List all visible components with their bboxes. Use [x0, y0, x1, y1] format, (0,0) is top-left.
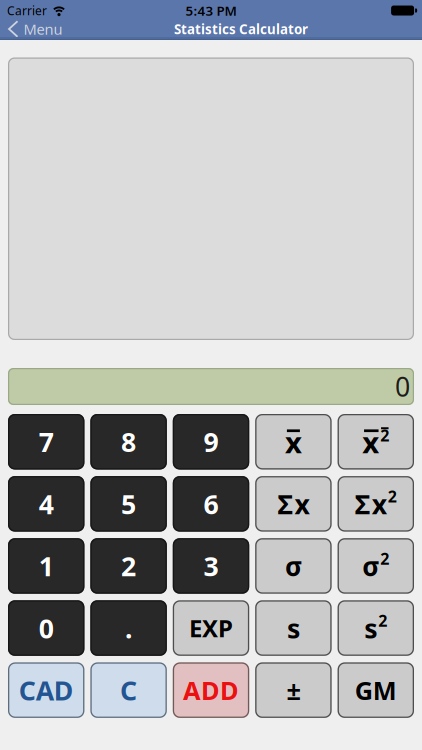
staticText: s	[287, 610, 300, 646]
staticText: s	[364, 610, 377, 646]
button[interactable]: EXP	[173, 600, 249, 656]
staticText: 7	[39, 424, 54, 459]
button[interactable]: σ	[255, 538, 332, 594]
staticText: GM	[355, 673, 397, 707]
staticText: x	[285, 422, 302, 461]
staticText: 2	[380, 425, 389, 446]
staticText: σ	[285, 548, 302, 584]
staticText: x	[362, 422, 379, 461]
button[interactable]: x	[255, 414, 332, 469]
staticText: CAD	[19, 672, 74, 708]
button[interactable]: 7	[8, 414, 84, 469]
button[interactable]: σ	[338, 538, 414, 594]
staticText: 5	[121, 486, 136, 521]
staticText: 9	[203, 424, 218, 459]
button[interactable]: s	[338, 600, 414, 656]
staticText: .	[125, 610, 132, 646]
button[interactable]: .	[90, 600, 167, 656]
staticText: Σx	[355, 486, 387, 521]
button[interactable]: 3	[173, 538, 249, 594]
staticText: 4	[39, 486, 54, 521]
staticText: Carrier	[7, 2, 47, 18]
staticText: 1	[39, 548, 54, 584]
staticText: 5:43 PM	[185, 2, 236, 19]
staticText: 2	[378, 610, 387, 631]
staticText: 3	[203, 548, 218, 584]
staticText: ADD	[183, 673, 239, 707]
button[interactable]: x	[338, 414, 414, 469]
button[interactable]: 4	[8, 476, 84, 532]
button[interactable]: Menu	[0, 19, 62, 39]
button[interactable]: s	[255, 600, 332, 656]
staticText: σ	[362, 548, 379, 584]
button[interactable]: 9	[173, 414, 249, 469]
button[interactable]: ADD	[173, 662, 249, 718]
staticText: 0	[39, 610, 54, 646]
button[interactable]: C	[90, 662, 167, 718]
button[interactable]: 5	[90, 476, 167, 532]
button[interactable]: Σx	[338, 476, 414, 532]
button[interactable]: 0	[8, 600, 84, 656]
button[interactable]: 6	[173, 476, 249, 532]
button[interactable]: Σx	[255, 476, 332, 532]
staticText: 2	[380, 548, 389, 569]
staticText: 2	[388, 486, 397, 507]
staticText: 2	[121, 548, 136, 584]
staticText: ±	[286, 673, 300, 707]
staticText: Σx	[277, 486, 309, 521]
staticText: 0	[395, 369, 410, 404]
staticText: C	[120, 672, 137, 708]
button[interactable]: GM	[338, 662, 414, 718]
button[interactable]: CAD	[8, 662, 84, 718]
button[interactable]: 1	[8, 538, 84, 594]
staticText: EXP	[189, 612, 233, 644]
button[interactable]: 2	[90, 538, 167, 594]
button[interactable]: 8	[90, 414, 167, 469]
staticText: 6	[203, 486, 218, 521]
button[interactable]: ±	[255, 662, 332, 718]
staticText: 8	[121, 424, 136, 459]
staticText: Statistics Calculator	[174, 20, 308, 38]
staticText: Menu	[23, 19, 62, 39]
